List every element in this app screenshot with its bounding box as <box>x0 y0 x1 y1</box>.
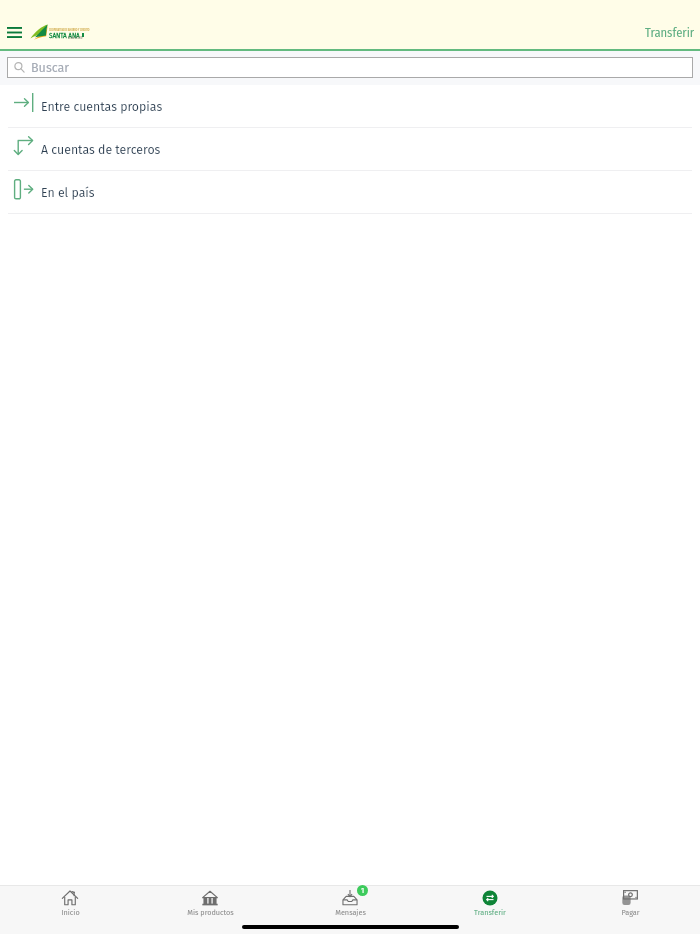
button[interactable]: Menu <box>0 13 28 51</box>
button[interactable]: Buscar <box>7 57 693 78</box>
staticText: Inicio <box>61 908 80 917</box>
staticText: A cuentas de terceros <box>41 142 161 157</box>
staticText: En el país <box>41 185 95 200</box>
staticText: Pagar <box>621 908 640 917</box>
staticText: Mis productos <box>187 908 234 917</box>
staticText: Buscar <box>31 60 70 75</box>
staticText: SANTA ANA <box>49 31 80 40</box>
button[interactable]: En el país <box>0 171 700 213</box>
button[interactable]: 1 <box>280 886 420 919</box>
button[interactable]: A cuentas de terceros <box>0 128 700 170</box>
button[interactable]: Pagar <box>560 886 700 919</box>
staticText: Entre cuentas propias <box>41 99 163 114</box>
button[interactable]: Transferir <box>420 886 560 919</box>
button[interactable]: Mis productos <box>140 886 280 919</box>
button[interactable]: Entre cuentas propias <box>0 85 700 127</box>
staticText: Transferir <box>474 908 506 917</box>
staticText: Mensajes <box>335 908 366 917</box>
staticText: Desde 25-2007 <box>68 37 84 40</box>
staticText: 1 <box>361 886 365 895</box>
staticText: Transferir <box>645 25 695 40</box>
staticText: COOPERATIVA DE AHORRO Y CREDITO <box>49 29 90 32</box>
button[interactable]: Inicio <box>0 886 140 919</box>
button[interactable]: Transferir <box>635 13 700 51</box>
